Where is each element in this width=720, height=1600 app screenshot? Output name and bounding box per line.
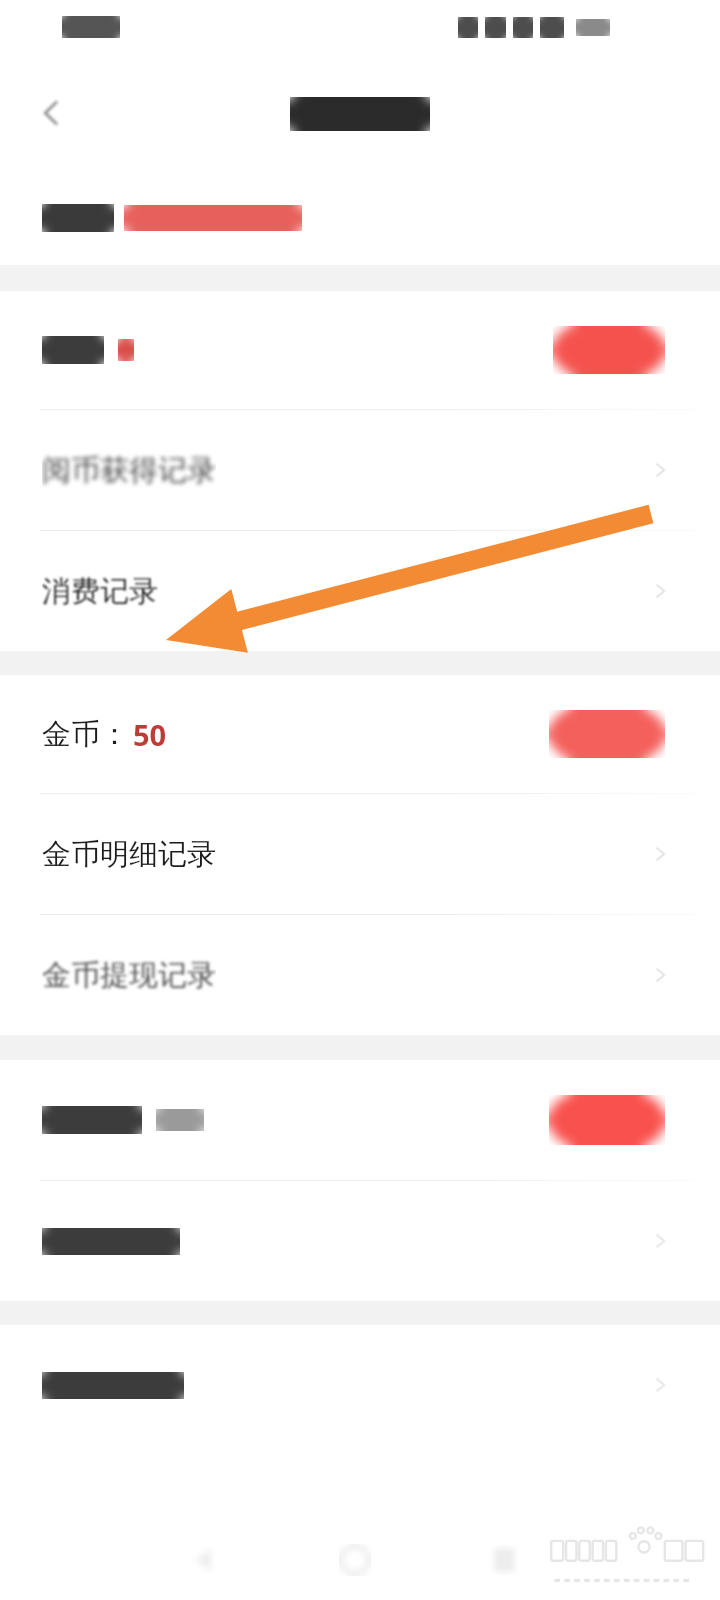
button[interactable]: 金币明细记录 [0,794,720,914]
staticText: 金币： [42,716,129,753]
button[interactable]: 返回 [22,84,80,142]
staticText: 消费记录 [42,573,158,610]
staticText: 阅币获得记录 [42,452,216,489]
button[interactable]: 金币提现记录 [0,915,720,1035]
button[interactable]: 开通记录 [0,1181,720,1301]
button[interactable]: 更多记录 [0,1325,720,1445]
button[interactable]: 最近任务 [476,1531,534,1589]
button[interactable]: 阅币余额 [0,291,720,409]
button[interactable]: 消费记录 [0,531,720,651]
staticText: 金币提现记录 [42,957,216,994]
button[interactable]: 金币： [0,675,720,793]
button[interactable]: 兑换 [549,710,665,758]
button[interactable]: 兑换 [549,1095,665,1145]
staticText: 50 [133,715,167,754]
staticText: 金币明细记录 [42,836,216,873]
button[interactable]: 余额 [0,1060,720,1180]
button[interactable]: 兑换 [553,326,665,374]
button[interactable]: 主页 [326,1531,384,1589]
button[interactable]: 阅币获得记录 [0,410,720,530]
